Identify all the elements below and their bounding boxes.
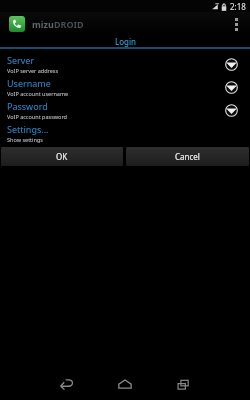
- staticText: mizu: [32, 18, 54, 30]
- staticText: Settings...: [7, 123, 49, 135]
- staticText: DROID: [54, 18, 84, 30]
- button[interactable]: Username: [0, 75, 250, 98]
- button[interactable]: Recent apps: [170, 372, 196, 396]
- other: Expand Server: [224, 57, 238, 71]
- staticText: OK: [56, 151, 68, 162]
- button[interactable]: Settings...: [0, 121, 250, 144]
- button[interactable]: Server: [0, 52, 250, 75]
- button[interactable]: More options: [228, 13, 244, 35]
- other: Expand Username: [224, 80, 238, 94]
- staticText: Username: [7, 77, 51, 89]
- staticText: Password: [7, 100, 48, 112]
- staticText: VoIP server address: [7, 67, 59, 74]
- staticText: VoIP account username: [7, 90, 69, 97]
- staticText: Show settings: [7, 136, 43, 143]
- staticText: 2:18: [230, 1, 246, 12]
- staticText: Login: [115, 36, 136, 47]
- button[interactable]: Cancel: [126, 147, 249, 166]
- button[interactable]: Password: [0, 98, 250, 121]
- button[interactable]: Home: [112, 372, 138, 396]
- button[interactable]: OK: [1, 147, 123, 166]
- staticText: Cancel: [175, 151, 200, 162]
- staticText: Server: [7, 54, 35, 66]
- button[interactable]: Login: [0, 36, 250, 47]
- button[interactable]: Back: [54, 372, 80, 396]
- staticText: VoIP account password: [7, 113, 67, 120]
- other: Expand Password: [224, 103, 238, 117]
